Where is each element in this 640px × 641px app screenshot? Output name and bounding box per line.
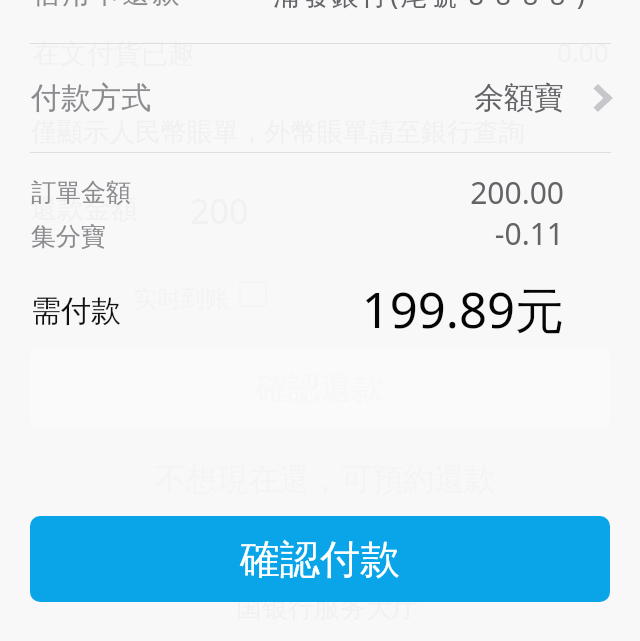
staticText: 集分寶 xyxy=(31,221,106,252)
staticText: -0.11 xyxy=(164,213,564,254)
staticText: 訂單金額 xyxy=(31,177,131,208)
button[interactable]: 信用卡還款 xyxy=(31,0,588,24)
button[interactable]: 付款方式 xyxy=(31,44,614,152)
staticText: 200.00 xyxy=(164,172,564,213)
staticText: 信用卡還款 xyxy=(31,0,181,11)
staticText: 還款金額 xyxy=(30,192,138,226)
button[interactable]: 確認付款 xyxy=(30,516,610,602)
staticText: 0.00 xyxy=(557,34,609,69)
staticText: 浦發銀行(尾號 8 8 8 8 ) xyxy=(273,0,588,13)
staticText: 199.89元 xyxy=(164,276,564,343)
other: Choose payment method xyxy=(594,84,614,112)
staticText: 在文付貨已趣 xyxy=(33,37,195,71)
staticText: 需付款 xyxy=(31,292,121,330)
staticText: 付款方式 xyxy=(31,79,151,117)
staticText: 国银行服务大厅 xyxy=(236,592,418,625)
staticText: 余額寶 xyxy=(474,79,564,117)
staticText: 確認付款 xyxy=(240,534,400,584)
